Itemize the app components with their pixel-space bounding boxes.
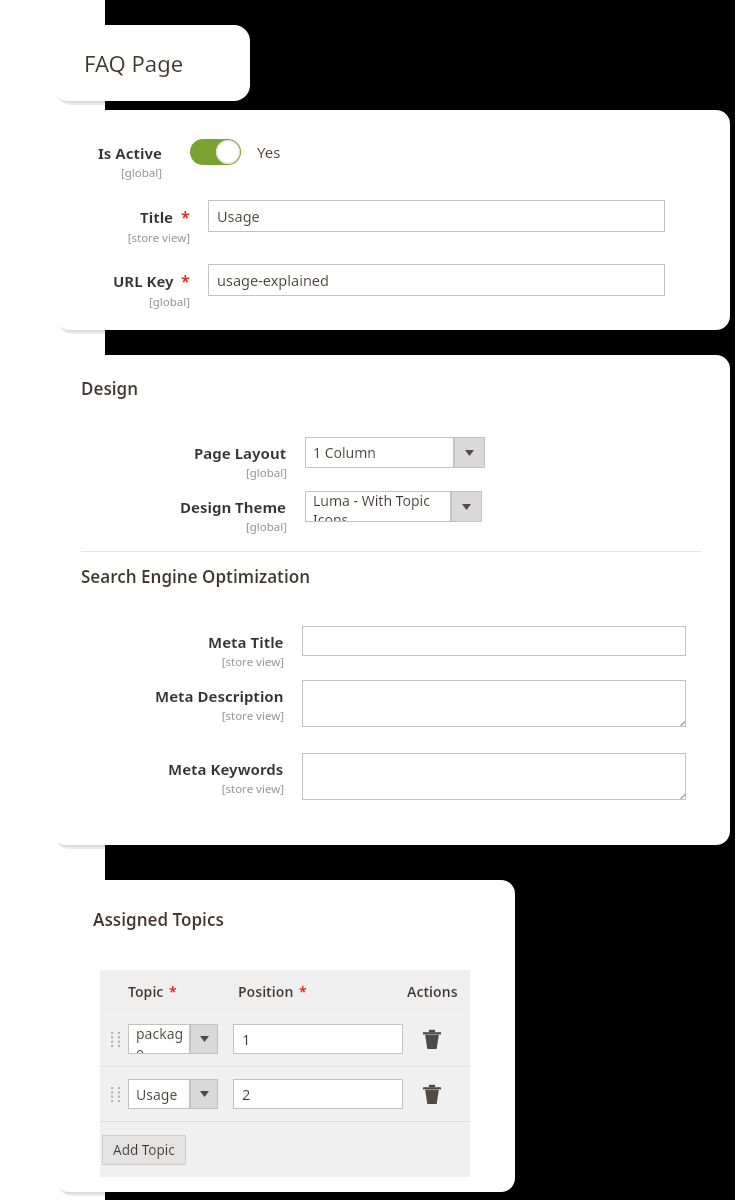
staticText: Page Layout (194, 443, 287, 463)
staticText: [store view] (127, 230, 190, 246)
button[interactable]: Delete row (417, 1079, 447, 1109)
button[interactable] (302, 753, 686, 800)
staticText: Meta Description (155, 686, 284, 706)
staticText: 1 (242, 1029, 251, 1049)
staticText: Add Topic (113, 1141, 175, 1159)
button[interactable]: package (128, 1024, 218, 1054)
button[interactable]: FAQ Page (52, 25, 250, 101)
staticText: Title (140, 207, 174, 227)
button[interactable]: 2 (233, 1079, 403, 1109)
staticText: FAQ Page (84, 48, 184, 78)
staticText: usage-explained (217, 270, 329, 290)
button[interactable]: Yes (190, 139, 281, 165)
button[interactable] (302, 626, 686, 656)
staticText: * (169, 982, 177, 1001)
staticText: 1 Column (313, 443, 376, 462)
button[interactable] (302, 680, 686, 727)
staticText: Yes (257, 142, 281, 162)
staticText: [global] (148, 294, 190, 310)
staticText: * (299, 982, 307, 1001)
staticText: Actions (407, 982, 458, 1001)
staticText: Usage (136, 1085, 178, 1104)
button[interactable]: Add Topic (102, 1135, 186, 1165)
staticText: Meta Title (208, 632, 284, 652)
staticText: [global] (245, 465, 287, 481)
staticText: Is Active (98, 143, 162, 163)
staticText: Design Theme (180, 497, 287, 517)
staticText: URL Key (113, 271, 174, 291)
staticText: Search Engine Optimization (81, 565, 311, 588)
staticText: [global] (245, 519, 287, 535)
staticText: * (181, 206, 190, 228)
staticText: * (181, 270, 190, 292)
staticText: [store view] (221, 781, 284, 797)
staticText: Design (81, 377, 139, 400)
button[interactable]: usage-explained (208, 264, 665, 296)
staticText: Position (238, 982, 294, 1001)
button[interactable]: Usage (208, 200, 665, 232)
staticText: Luma - With Topic Icons (313, 491, 451, 522)
staticText: Usage (217, 206, 260, 226)
staticText: [store view] (221, 654, 284, 670)
button[interactable]: Delete row (417, 1024, 447, 1054)
staticText: package (136, 1024, 190, 1054)
staticText: 2 (242, 1084, 251, 1104)
button[interactable]: Reorder (104, 1081, 126, 1107)
button[interactable]: Luma - With Topic Icons (305, 491, 482, 522)
staticText: [global] (120, 165, 162, 181)
button[interactable]: 1 Column (305, 437, 485, 468)
staticText: Meta Keywords (168, 759, 284, 779)
staticText: Topic (128, 982, 164, 1001)
staticText: Assigned Topics (93, 908, 224, 931)
button[interactable]: Reorder (104, 1026, 126, 1052)
button[interactable]: Usage (128, 1079, 218, 1109)
button[interactable]: 1 (233, 1024, 403, 1054)
staticText: [store view] (221, 708, 284, 724)
